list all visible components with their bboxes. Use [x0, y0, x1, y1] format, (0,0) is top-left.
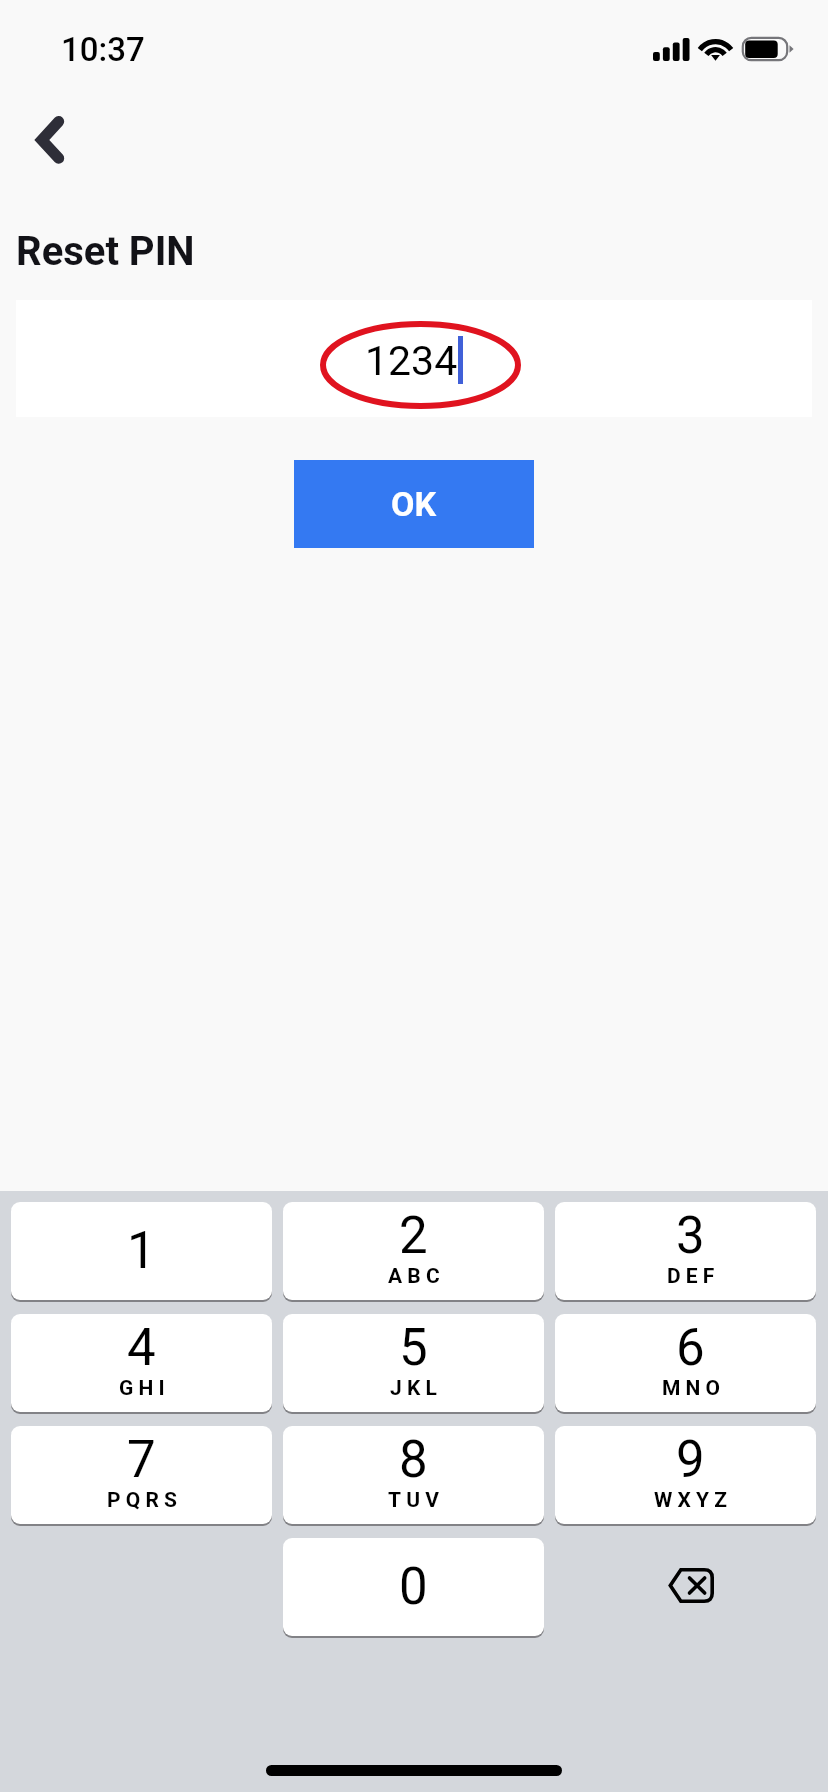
button[interactable]: 8: [283, 1426, 544, 1526]
button[interactable]: 5: [283, 1314, 544, 1414]
staticText: 8: [399, 1430, 428, 1490]
button[interactable]: Backspace: [555, 1538, 816, 1636]
staticText: WXYZ: [654, 1488, 733, 1513]
staticText: 3: [676, 1206, 705, 1266]
staticText: MNO: [662, 1376, 726, 1401]
staticText: Reset PIN: [16, 228, 195, 275]
staticText: 7: [127, 1430, 156, 1490]
staticText: 6: [676, 1318, 705, 1378]
staticText: 4: [127, 1318, 156, 1378]
staticText: TUV: [388, 1488, 445, 1513]
staticText: JKL: [390, 1376, 443, 1401]
staticText: PQRS: [107, 1488, 183, 1513]
button[interactable]: 0: [283, 1538, 544, 1638]
button[interactable]: 7: [11, 1426, 272, 1526]
button[interactable]: 1234: [16, 300, 812, 417]
staticText: 5: [399, 1318, 428, 1378]
staticText: 2: [399, 1206, 428, 1266]
button[interactable]: 1: [11, 1202, 272, 1302]
button[interactable]: Back: [6, 100, 96, 186]
staticText: GHI: [119, 1376, 170, 1401]
staticText: 1: [127, 1221, 156, 1281]
staticText: 9: [676, 1430, 705, 1490]
button[interactable]: 6: [555, 1314, 816, 1414]
button[interactable]: OK: [294, 460, 534, 548]
staticText: OK: [391, 484, 437, 524]
staticText: 1234: [365, 337, 458, 385]
staticText: 0: [399, 1557, 428, 1617]
button[interactable]: 4: [11, 1314, 272, 1414]
staticText: DEF: [667, 1264, 720, 1289]
button[interactable]: 9: [555, 1426, 816, 1526]
button[interactable]: 2: [283, 1202, 544, 1302]
button[interactable]: 3: [555, 1202, 816, 1302]
staticText: 10:37: [61, 30, 145, 69]
staticText: ABC: [388, 1264, 445, 1289]
